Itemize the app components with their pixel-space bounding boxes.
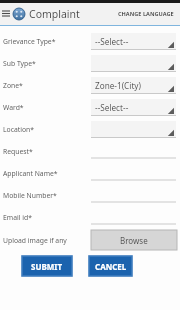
button[interactable] (91, 143, 176, 159)
button[interactable]: CHANGE LANGUAGE (112, 6, 180, 22)
button[interactable]: CANCEL (89, 256, 132, 276)
staticText: Location* (3, 125, 35, 134)
button[interactable]: Open navigation menu (0, 3, 12, 25)
button[interactable]: Browse (91, 230, 177, 250)
staticText: Mobile Number* (3, 191, 57, 200)
staticText: Zone-1(City) (95, 80, 141, 91)
button[interactable]: SUBMIT (22, 256, 72, 276)
staticText: SUBMIT (31, 261, 63, 272)
staticText: CANCEL (95, 261, 127, 272)
staticText: Ward* (3, 103, 24, 112)
staticText: Applicant Name* (3, 169, 58, 178)
staticText: Email id* (3, 213, 32, 222)
staticText: Sub Type* (3, 59, 36, 68)
button[interactable]: Zone-1(City) (91, 77, 176, 94)
staticText: Zone* (3, 81, 23, 90)
button[interactable]: --Select-- (91, 33, 176, 50)
button[interactable]: --Select-- (91, 99, 176, 116)
staticText: Grievance Type* (3, 37, 56, 46)
button[interactable] (91, 209, 176, 225)
button[interactable] (91, 55, 176, 72)
staticText: Complaint (29, 7, 80, 21)
staticText: CHANGE LANGUAGE (118, 10, 174, 18)
staticText: --Select-- (95, 36, 129, 47)
button[interactable] (91, 187, 176, 203)
staticText: Request* (3, 147, 33, 156)
staticText: Upload image if any (3, 236, 67, 245)
staticText: --Select-- (95, 102, 129, 113)
button[interactable] (91, 121, 176, 138)
staticText: Browse (120, 235, 148, 246)
button[interactable] (91, 165, 176, 181)
